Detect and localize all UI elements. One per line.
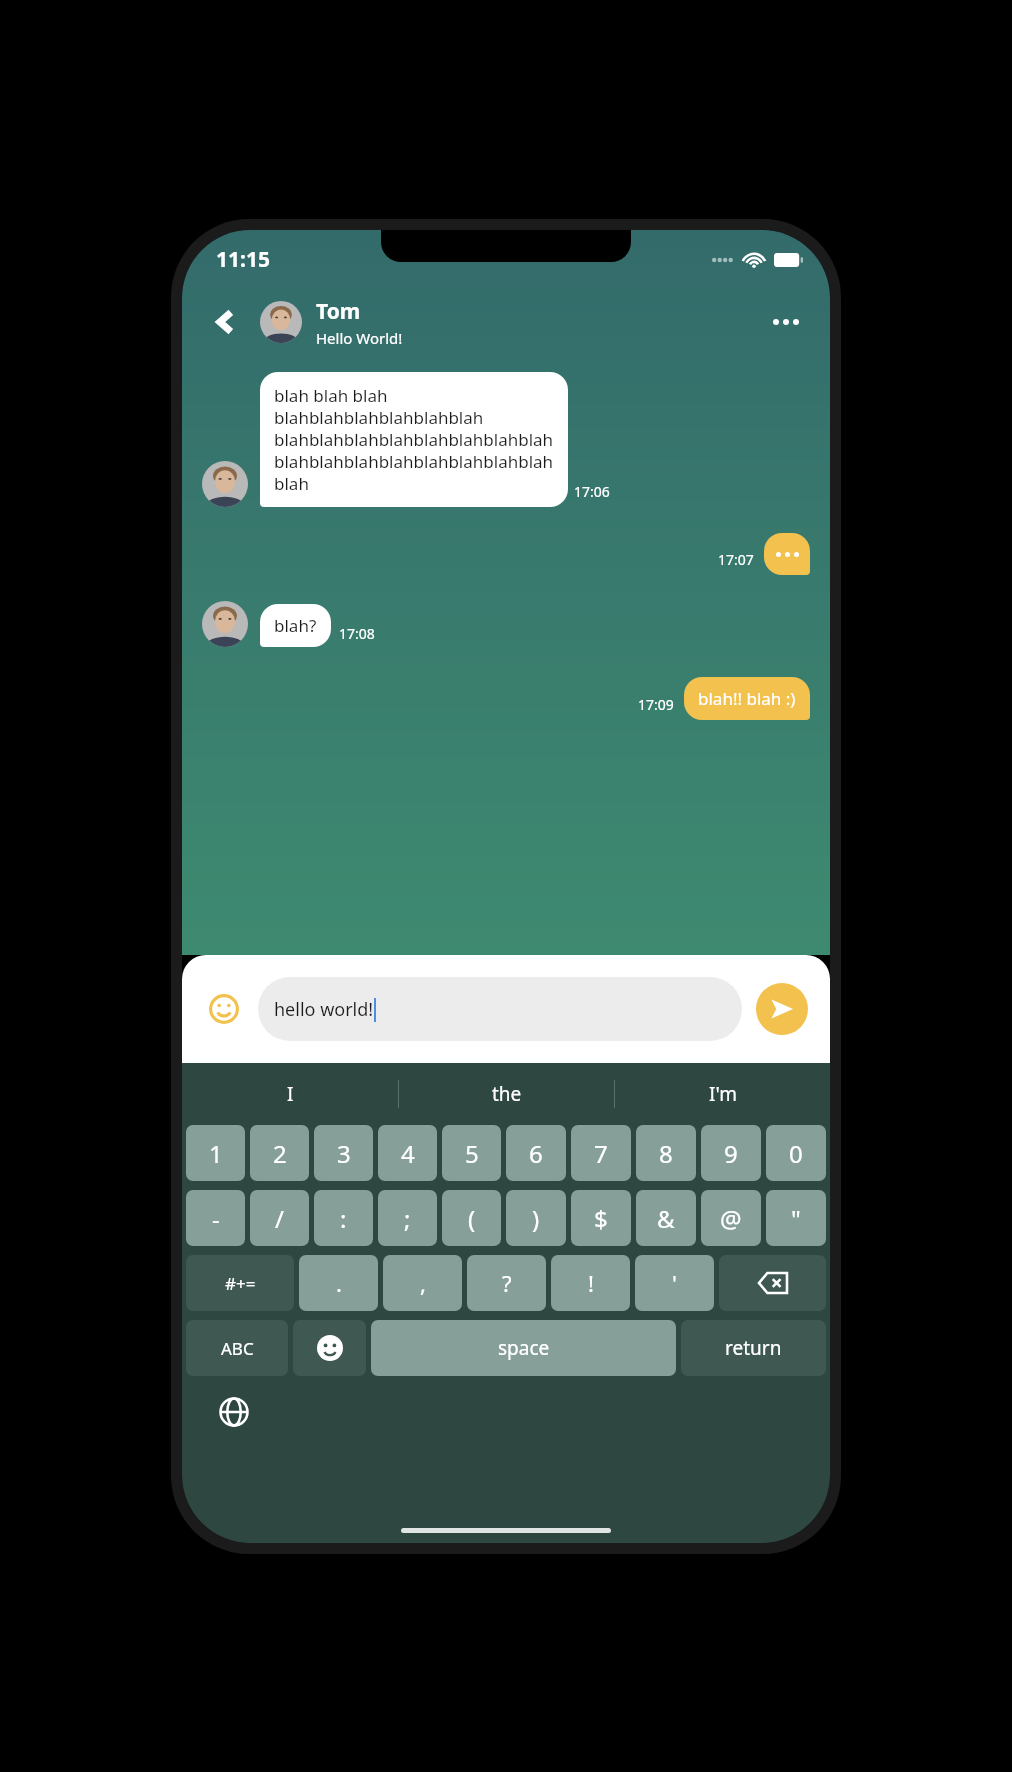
staticText: $ (594, 1202, 608, 1235)
button[interactable]: Send (756, 983, 808, 1035)
staticText: 4 (401, 1137, 415, 1170)
button[interactable]: blah!! blah :) (684, 677, 810, 720)
button[interactable]: . (299, 1255, 378, 1311)
button[interactable]: Emoji (204, 989, 244, 1029)
staticText: @ (720, 1202, 742, 1235)
staticText: 5 (465, 1137, 479, 1170)
staticText: the (492, 1081, 522, 1107)
button[interactable]: Emoji keyboard (293, 1320, 366, 1376)
staticText: return (725, 1335, 782, 1361)
staticText: ) (532, 1202, 540, 1235)
staticText: ( (468, 1202, 476, 1235)
button[interactable]: return (681, 1320, 826, 1376)
staticText: 0 (789, 1137, 803, 1170)
staticText: 6 (529, 1137, 543, 1170)
staticText: Tom (316, 297, 361, 326)
button[interactable]: ) (506, 1190, 566, 1246)
button[interactable]: Backspace (719, 1255, 826, 1311)
staticText: I (287, 1081, 294, 1107)
staticText: , (420, 1268, 426, 1298)
button[interactable]: / (250, 1190, 309, 1246)
staticText: 8 (659, 1137, 673, 1170)
staticText: 17:08 (339, 624, 375, 643)
button[interactable]: Back (204, 300, 248, 344)
staticText: hello world! (274, 997, 374, 1022)
button[interactable]: hello world! (258, 977, 742, 1041)
button[interactable]: & (636, 1190, 696, 1246)
staticText: 3 (337, 1137, 351, 1170)
button[interactable]: blah? (260, 604, 331, 647)
staticText: 17:07 (718, 550, 754, 569)
button[interactable]: 4 (378, 1125, 437, 1181)
staticText: . (336, 1268, 342, 1298)
staticText: : (340, 1202, 347, 1235)
button[interactable]: ( (442, 1190, 501, 1246)
button[interactable]: 1 (186, 1125, 245, 1181)
staticText: / (275, 1202, 284, 1235)
staticText: #+= (225, 1272, 256, 1295)
button[interactable]: More options (764, 300, 808, 344)
staticText: 7 (594, 1137, 608, 1170)
button[interactable]: 3 (314, 1125, 373, 1181)
staticText: 1 (209, 1137, 223, 1170)
button[interactable]: blah blah blah blahblahblahblahblahblah … (260, 372, 568, 507)
button[interactable]: 9 (701, 1125, 761, 1181)
button[interactable]: 0 (766, 1125, 826, 1181)
staticText: blah? (274, 614, 317, 637)
staticText: space (498, 1335, 550, 1361)
staticText: ABC (221, 1337, 254, 1360)
staticText: blah!! blah :) (698, 687, 796, 710)
button[interactable]: 7 (571, 1125, 631, 1181)
staticText: 17:09 (638, 695, 674, 714)
button[interactable]: ; (378, 1190, 437, 1246)
staticText: ' (672, 1268, 677, 1298)
button[interactable]: Change language (212, 1390, 256, 1434)
button[interactable]: 8 (636, 1125, 696, 1181)
button[interactable] (764, 533, 810, 575)
staticText: " (791, 1202, 801, 1235)
button[interactable]: " (766, 1190, 826, 1246)
staticText: I'm (709, 1081, 737, 1107)
button[interactable]: 6 (506, 1125, 566, 1181)
button[interactable]: #+= (186, 1255, 294, 1311)
button[interactable]: , (383, 1255, 462, 1311)
button[interactable]: ABC (186, 1320, 288, 1376)
staticText: blah blah blah blahblahblahblahblahblah … (274, 384, 554, 495)
staticText: 17:06 (574, 482, 610, 501)
button[interactable]: - (186, 1190, 245, 1246)
button[interactable]: @ (701, 1190, 761, 1246)
button[interactable]: ' (635, 1255, 714, 1311)
staticText: ; (404, 1202, 411, 1235)
button[interactable]: ? (467, 1255, 546, 1311)
staticText: ? (502, 1268, 512, 1298)
staticText: - (212, 1202, 220, 1235)
button[interactable]: $ (571, 1190, 631, 1246)
staticText: 2 (273, 1137, 287, 1170)
button[interactable]: I (182, 1063, 398, 1125)
button[interactable]: I'm (615, 1063, 830, 1125)
button[interactable]: the (399, 1063, 614, 1125)
button[interactable]: ! (551, 1255, 630, 1311)
staticText: & (657, 1202, 675, 1235)
button[interactable]: : (314, 1190, 373, 1246)
staticText: ! (588, 1268, 594, 1298)
staticText: 9 (724, 1137, 738, 1170)
staticText: Hello World! (316, 328, 403, 348)
staticText: 11:15 (216, 245, 270, 274)
button[interactable]: space (371, 1320, 676, 1376)
button[interactable]: 5 (442, 1125, 501, 1181)
button[interactable]: 2 (250, 1125, 309, 1181)
